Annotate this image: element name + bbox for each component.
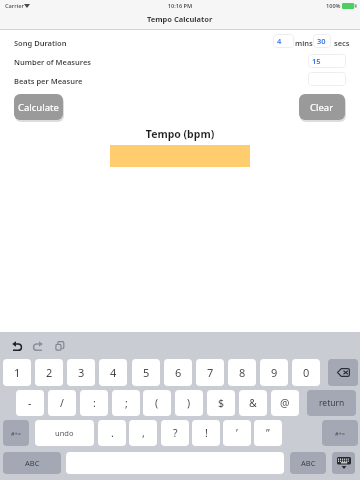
staticText: ; — [125, 396, 128, 410]
staticText: Number of Measures — [14, 57, 91, 67]
button[interactable]: 8 — [228, 359, 256, 386]
button[interactable]: ? — [161, 420, 189, 446]
button[interactable]: 2 — [35, 359, 63, 386]
button[interactable]: ” — [254, 420, 282, 446]
staticText: mins — [295, 38, 313, 48]
staticText: ? — [173, 426, 178, 440]
button[interactable]: : — [80, 390, 108, 416]
staticText: Clear — [310, 101, 334, 114]
button[interactable]: ! — [192, 420, 220, 446]
button[interactable]: Calculate — [14, 94, 63, 120]
button[interactable]: #+= — [3, 420, 29, 446]
staticText: 7 — [207, 365, 214, 380]
staticText: 2 — [46, 365, 53, 380]
button[interactable]: / — [48, 390, 76, 416]
button[interactable]: Clear — [299, 94, 345, 120]
staticText: / — [60, 396, 64, 410]
button[interactable]: 3 — [67, 359, 95, 386]
staticText: Tempo Calculator — [147, 14, 213, 24]
staticText: #+= — [11, 430, 21, 437]
staticText: 4 — [110, 365, 117, 380]
staticText: 8 — [239, 365, 246, 380]
button[interactable]: #+= — [322, 420, 358, 446]
staticText: secs — [334, 38, 350, 48]
button[interactable]: , — [129, 420, 157, 446]
button[interactable]: @ — [271, 390, 299, 416]
button[interactable]: 7 — [196, 359, 224, 386]
staticText: 4 — [277, 36, 282, 46]
staticText: ’ — [236, 426, 238, 440]
staticText: - — [28, 396, 32, 410]
staticText: ABC — [25, 458, 40, 468]
button[interactable]: 5 — [132, 359, 160, 386]
button[interactable]: ) — [175, 390, 203, 416]
button[interactable]: Undo — [12, 342, 22, 351]
staticText: 30 — [317, 36, 326, 46]
staticText: . — [111, 426, 114, 440]
staticText: 9 — [271, 365, 278, 380]
staticText: 5 — [143, 365, 150, 380]
staticText: 10:16 PM — [0, 2, 360, 10]
button[interactable]: & — [239, 390, 267, 416]
staticText: 15 — [312, 56, 321, 66]
button[interactable]: ( — [143, 390, 171, 416]
staticText: 3 — [78, 365, 85, 380]
button[interactable]: 30 — [313, 34, 331, 48]
button[interactable]: Redo — [33, 342, 43, 351]
staticText: Song Duration — [14, 38, 67, 48]
button[interactable]: - — [16, 390, 44, 416]
button[interactable]: 15 — [308, 54, 346, 68]
button[interactable]: 4 — [99, 359, 127, 386]
staticText: ( — [155, 396, 159, 410]
button[interactable]: Hide keyboard — [332, 452, 355, 474]
staticText: @ — [280, 396, 290, 410]
staticText: : — [93, 396, 96, 410]
button[interactable]: 4 — [273, 34, 294, 48]
button[interactable]: 0 — [292, 359, 320, 386]
button[interactable]: 6 — [164, 359, 192, 386]
staticText: ) — [187, 396, 191, 410]
staticText: Beats per Measure — [14, 76, 83, 86]
staticText: return — [319, 397, 345, 409]
staticText: $ — [218, 396, 225, 410]
staticText: , — [142, 426, 145, 440]
button[interactable]: undo — [35, 420, 94, 446]
button[interactable]: return — [307, 390, 356, 416]
staticText: #+= — [335, 430, 345, 437]
button[interactable]: Backspace — [328, 359, 358, 386]
staticText: 100% — [326, 2, 341, 10]
staticText: Carrier — [5, 2, 24, 10]
staticText: 1 — [14, 365, 21, 380]
button[interactable]: . — [98, 420, 126, 446]
staticText: ABC — [301, 458, 316, 468]
staticText: ! — [205, 426, 208, 440]
button[interactable]: ABC — [290, 452, 326, 474]
staticText: ” — [266, 426, 270, 440]
button[interactable]: 9 — [260, 359, 288, 386]
button[interactable]: ABC — [3, 452, 61, 474]
staticText: & — [249, 396, 257, 410]
staticText: 0 — [303, 365, 310, 380]
staticText: Tempo (bpm) — [0, 127, 360, 141]
button[interactable]: ’ — [223, 420, 251, 446]
button[interactable] — [308, 72, 346, 86]
staticText: undo — [55, 428, 74, 438]
staticText: Calculate — [18, 101, 59, 114]
button[interactable]: 1 — [3, 359, 31, 386]
button[interactable]: Paste — [55, 341, 64, 351]
button[interactable]: ; — [112, 390, 140, 416]
staticText: 6 — [175, 365, 182, 380]
button[interactable]: $ — [207, 390, 235, 416]
